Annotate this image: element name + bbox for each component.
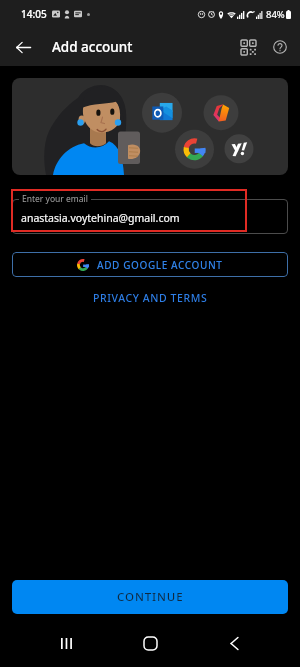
button[interactable]: CONTINUE	[12, 580, 288, 614]
button[interactable]: Recent apps	[44, 620, 88, 667]
button[interactable]: ADD GOOGLE ACCOUNT	[12, 252, 288, 277]
button[interactable]: Scan QR code	[232, 31, 264, 63]
button[interactable]: Back	[212, 620, 256, 667]
button[interactable]: Back	[6, 30, 40, 64]
button[interactable]: Home	[128, 620, 172, 667]
staticText: 14:05	[21, 7, 47, 21]
staticText: PRIVACY AND TERMS	[93, 291, 208, 305]
staticText: 84%	[266, 8, 285, 21]
staticText: Enter your email	[22, 193, 88, 205]
staticText: Add account	[52, 38, 133, 56]
button[interactable]: Help	[264, 31, 296, 63]
staticText: CONTINUE	[117, 589, 184, 605]
staticText: ADD GOOGLE ACCOUNT	[97, 258, 223, 272]
staticText: anastasia.voytehina@gmail.com	[21, 211, 180, 225]
button[interactable]: PRIVACY AND TERMS	[85, 289, 216, 307]
